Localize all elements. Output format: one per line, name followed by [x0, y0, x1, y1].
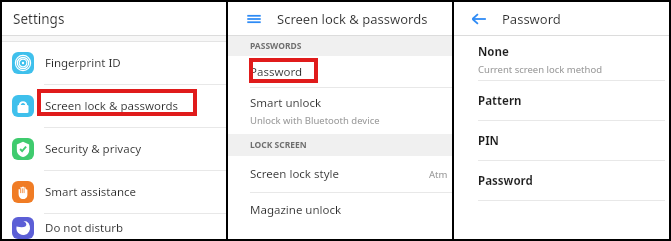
staticText: Settings	[13, 10, 65, 28]
staticText: PASSWORDS	[250, 40, 302, 52]
button[interactable]: Menu	[228, 2, 452, 35]
staticText: Magazine unlock	[250, 202, 342, 218]
button[interactable]: None	[454, 40, 671, 80]
button[interactable]: Pattern	[454, 81, 671, 120]
staticText: Do not disturb	[45, 220, 124, 236]
staticText: Atm	[429, 168, 448, 181]
staticText: Screen lock style	[250, 166, 339, 182]
staticText: Password	[478, 173, 533, 189]
staticText: None	[478, 44, 509, 60]
staticText: Password	[250, 64, 303, 80]
other: Menu	[246, 11, 262, 27]
staticText: Screen lock & passwords	[277, 10, 428, 28]
button[interactable]: Back	[470, 10, 488, 28]
staticText: Password	[502, 10, 561, 28]
staticText: Current screen lock method	[478, 63, 602, 76]
button[interactable]: Fingerprint ID	[0, 42, 226, 84]
staticText: Smart unlock	[250, 95, 322, 111]
button[interactable]: Do not disturb	[0, 214, 226, 241]
staticText: PIN	[478, 133, 499, 149]
staticText: Fingerprint ID	[45, 55, 121, 71]
button[interactable]: Password	[228, 56, 452, 87]
button[interactable]: Security & privacy	[0, 128, 226, 170]
staticText: LOCK SCREEN	[250, 139, 307, 151]
button[interactable]: Password	[454, 161, 671, 200]
button[interactable]: Smart assistance	[0, 171, 226, 213]
staticText: Screen lock & passwords	[45, 98, 179, 114]
staticText: Smart assistance	[45, 184, 137, 200]
staticText: Pattern	[478, 93, 522, 109]
staticText: Unlock with Bluetooth device	[250, 114, 380, 127]
button[interactable]: Screen lock & passwords	[0, 85, 226, 127]
button[interactable]: PIN	[454, 121, 671, 160]
staticText: Security & privacy	[45, 141, 142, 157]
button[interactable]: Screen lock style	[228, 156, 452, 192]
button[interactable]: Magazine unlock	[228, 193, 452, 227]
button[interactable]: Smart unlock	[228, 88, 452, 134]
